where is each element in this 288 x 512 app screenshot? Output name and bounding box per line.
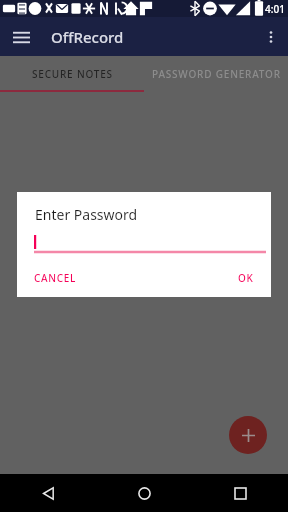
button[interactable]: CANCEL: [28, 267, 83, 289]
button[interactable]: Back: [0, 474, 96, 512]
button[interactable]: More options: [256, 22, 286, 52]
staticText: Enter Password: [35, 205, 138, 224]
button[interactable]: Add secure note: [229, 416, 267, 454]
button[interactable]: Open navigation drawer: [6, 22, 36, 52]
staticText: 4:01: [265, 2, 285, 16]
button[interactable]: OK: [232, 267, 260, 289]
staticText: SECURE NOTES: [32, 67, 113, 81]
staticText: OK: [238, 271, 254, 285]
staticText: CANCEL: [34, 271, 77, 285]
staticText: OffRecord: [51, 27, 124, 47]
button[interactable]: SECURE NOTES: [0, 56, 144, 92]
button[interactable]: Home: [96, 474, 192, 512]
button[interactable]: Recent apps: [192, 474, 288, 512]
staticText: PASSWORD GENERATOR: [152, 67, 281, 81]
button[interactable]: PASSWORD GENERATOR: [144, 56, 288, 92]
button[interactable]: Password input field: [34, 235, 266, 254]
